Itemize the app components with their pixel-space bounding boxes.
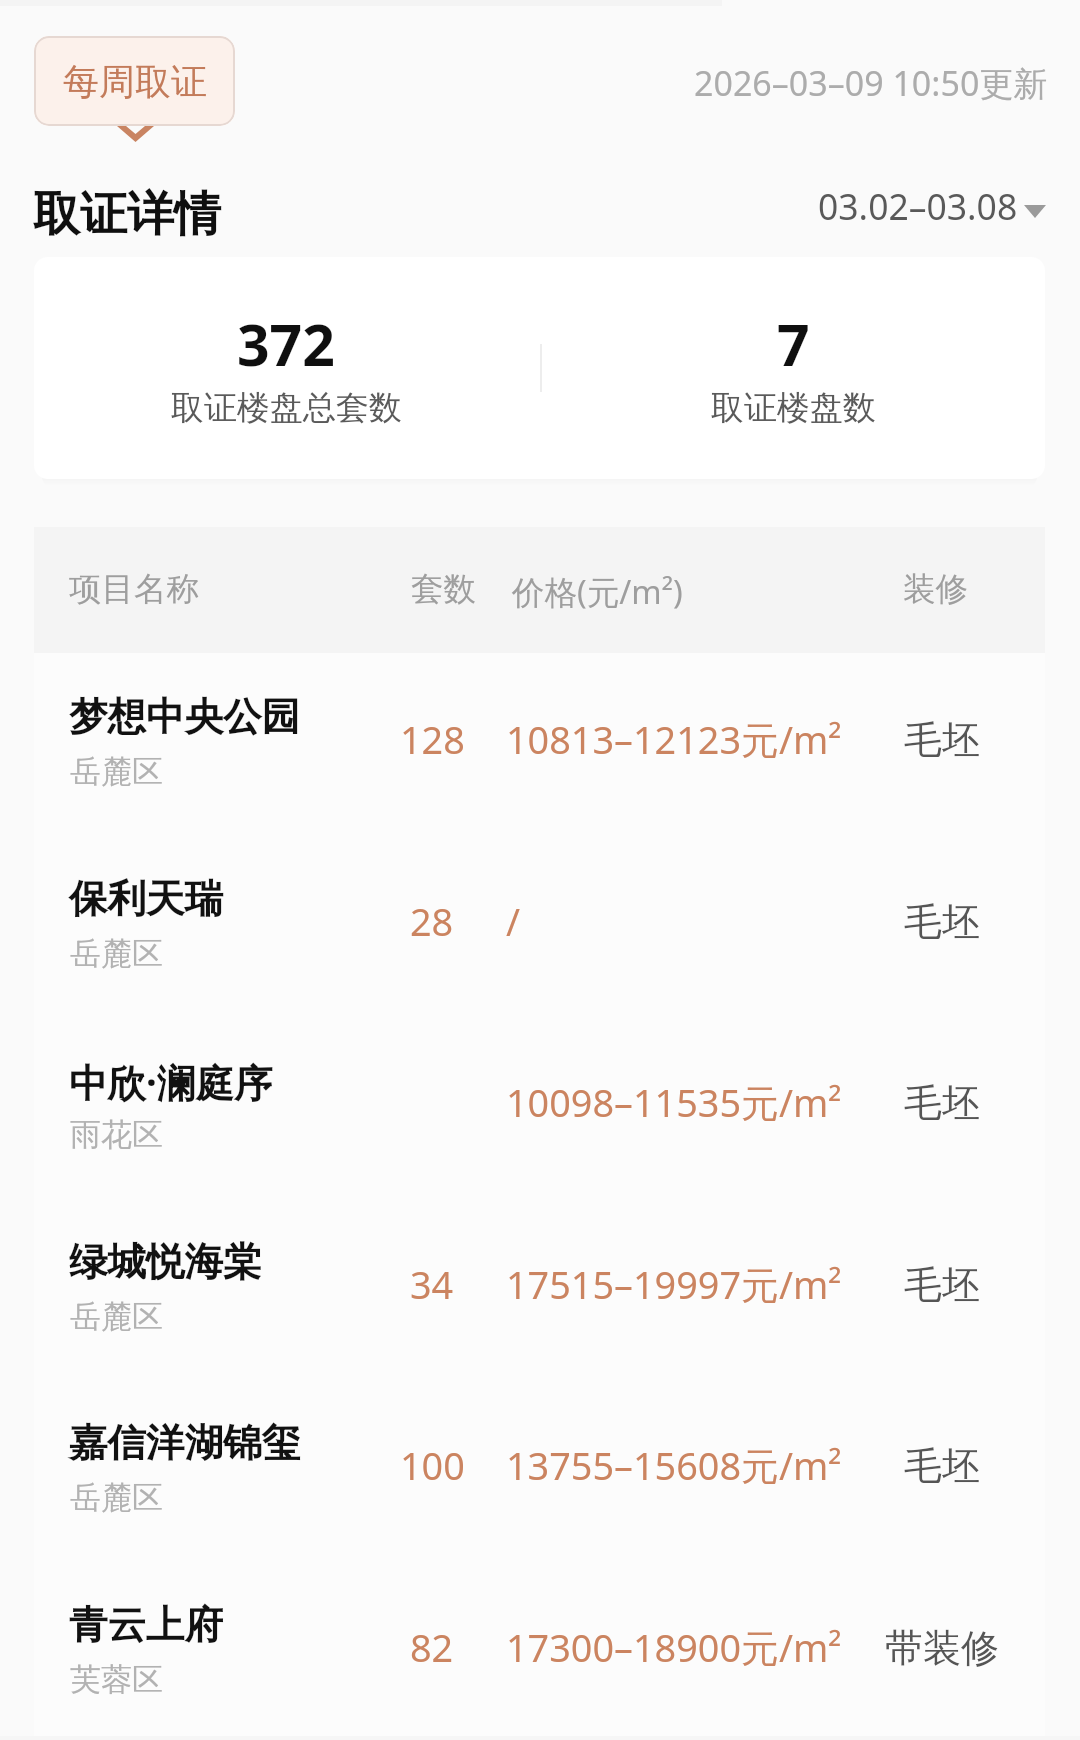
button[interactable]: 嘉信洋湖锦玺 — [34, 1379, 1045, 1561]
staticText: 100 — [400, 1440, 465, 1491]
button[interactable]: 青云上府 — [34, 1561, 1045, 1740]
staticText: 嘉信洋湖锦玺 — [69, 1419, 300, 1468]
staticText: 毛坯 — [904, 1261, 980, 1309]
staticText: 梦想中央公园 — [69, 693, 300, 742]
staticText: 保利天瑞 — [69, 875, 223, 924]
staticText: 128 — [400, 714, 465, 765]
staticText: 17515–19997元/m² — [506, 1259, 842, 1311]
staticText: 毛坯 — [904, 1442, 980, 1490]
staticText: 03.02–03.08 — [818, 182, 1018, 230]
staticText: 岳麓区 — [70, 934, 163, 973]
staticText: 项目名称 — [69, 569, 199, 610]
staticText: 每周取证 — [63, 59, 207, 104]
staticText: 毛坯 — [904, 1079, 980, 1127]
staticText: 34 — [410, 1259, 454, 1310]
staticText: 10098–11535元/m² — [506, 1077, 842, 1129]
staticText: 10813–12123元/m² — [506, 714, 842, 766]
button[interactable]: 中欣·澜庭序 — [34, 1016, 1045, 1198]
staticText: 取证楼盘数 — [711, 387, 876, 429]
staticText: 毛坯 — [904, 898, 980, 946]
staticText: 岳麓区 — [70, 1297, 163, 1336]
staticText: 雨花区 — [70, 1115, 163, 1154]
button[interactable]: 保利天瑞 — [34, 835, 1045, 1017]
staticText: 绿城悦海棠 — [69, 1238, 262, 1287]
staticText: 2026–03–09 10:50更新 — [694, 60, 1048, 106]
button[interactable]: 03.02–03.08 — [808, 180, 1052, 232]
staticText: 价格(元/m²) — [512, 569, 683, 613]
staticText: 岳麓区 — [70, 752, 163, 791]
staticText: 28 — [410, 896, 454, 947]
staticText: 岳麓区 — [70, 1478, 163, 1517]
staticText: 套数 — [411, 569, 476, 610]
staticText: 82 — [410, 1622, 454, 1673]
button[interactable]: 372 — [36, 257, 536, 479]
button[interactable]: 7 — [543, 257, 1043, 479]
other: Selected tab indicator — [117, 126, 154, 142]
staticText: 芙蓉区 — [70, 1660, 163, 1699]
staticText: 带装修 — [885, 1624, 999, 1672]
button[interactable]: 绿城悦海棠 — [34, 1198, 1045, 1380]
staticText: 13755–15608元/m² — [506, 1440, 842, 1492]
staticText: 取证详情 — [33, 185, 221, 244]
staticText: 中欣·澜庭序 — [69, 1056, 273, 1109]
button[interactable]: 每周取证 — [34, 36, 235, 126]
staticText: 装修 — [903, 569, 968, 610]
button[interactable]: 梦想中央公园 — [34, 653, 1045, 835]
staticText: 7 — [777, 305, 810, 383]
staticText: 372 — [237, 305, 335, 383]
staticText: 取证楼盘总套数 — [171, 387, 402, 429]
staticText: 毛坯 — [904, 716, 980, 764]
staticText: / — [506, 896, 521, 947]
staticText: 17300–18900元/m² — [506, 1622, 842, 1674]
staticText: 青云上府 — [69, 1601, 223, 1650]
